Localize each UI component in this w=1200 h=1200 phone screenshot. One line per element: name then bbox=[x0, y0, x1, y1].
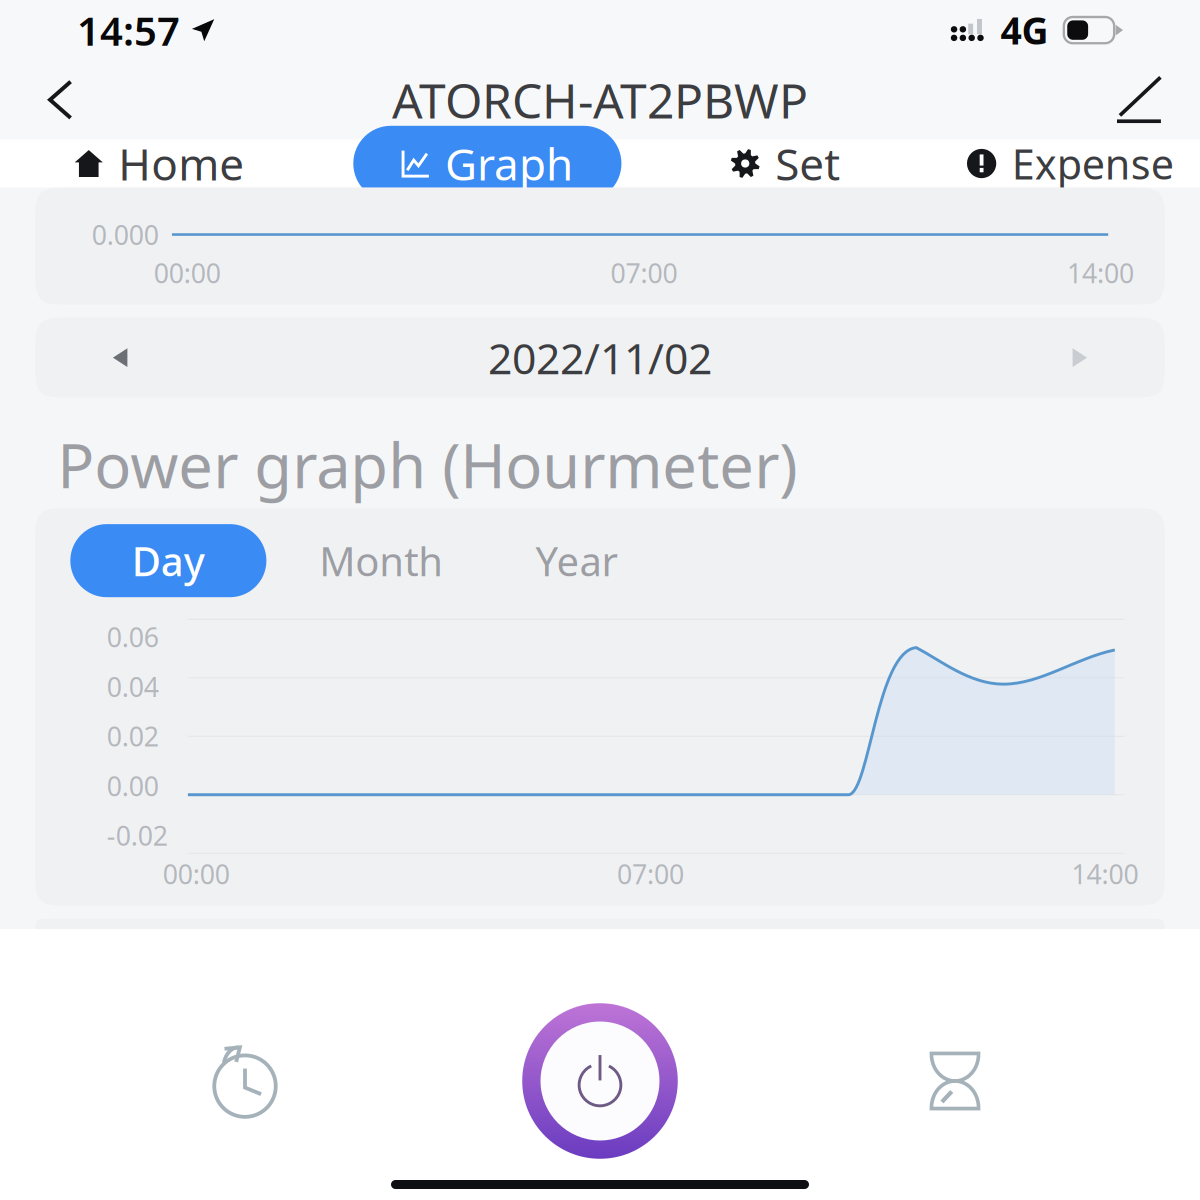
staticText: Graph bbox=[445, 134, 573, 193]
staticText: Set bbox=[775, 134, 840, 193]
staticText: 00:00 bbox=[163, 856, 230, 892]
staticText: 14:00 bbox=[1067, 255, 1134, 291]
staticText: 07:00 bbox=[610, 255, 677, 291]
staticText: 00:00 bbox=[154, 255, 221, 291]
staticText: Month bbox=[319, 534, 443, 587]
staticText: Year bbox=[535, 534, 618, 587]
button[interactable]: Month bbox=[280, 524, 483, 597]
button[interactable]: 2022/11/02 bbox=[35, 318, 1165, 398]
staticText: Home bbox=[118, 134, 244, 193]
staticText: -0.02 bbox=[107, 818, 168, 853]
button[interactable]: Set bbox=[704, 126, 867, 201]
staticText: 0.00 bbox=[107, 768, 159, 804]
button[interactable]: Year bbox=[496, 524, 658, 597]
staticText: 0.06 bbox=[107, 619, 159, 655]
button[interactable]: Expense bbox=[949, 128, 1178, 199]
button[interactable]: Graph bbox=[353, 126, 621, 201]
button[interactable]: Schedule bbox=[855, 991, 1055, 1171]
button[interactable]: Back bbox=[13, 68, 110, 132]
staticText: 2022/11/02 bbox=[488, 329, 712, 386]
staticText: 14:00 bbox=[1071, 856, 1138, 892]
staticText: 14:57 bbox=[77, 3, 180, 57]
staticText: Power graph (Hourmeter) bbox=[57, 424, 797, 505]
staticText: 4G bbox=[1000, 5, 1048, 55]
button[interactable]: Home bbox=[48, 126, 271, 201]
button[interactable]: Power bbox=[490, 991, 710, 1171]
button[interactable]: Edit bbox=[1090, 68, 1187, 132]
staticText: 0.000 bbox=[92, 217, 159, 252]
button[interactable]: History bbox=[145, 991, 345, 1171]
staticText: ATORCH-AT2PBWP bbox=[392, 68, 808, 132]
staticText: Expense bbox=[1012, 136, 1174, 191]
staticText: 0.02 bbox=[107, 718, 159, 754]
button[interactable]: Day bbox=[70, 524, 266, 597]
staticText: 0.04 bbox=[107, 669, 159, 704]
staticText: 07:00 bbox=[617, 856, 684, 892]
staticText: Day bbox=[132, 534, 205, 587]
